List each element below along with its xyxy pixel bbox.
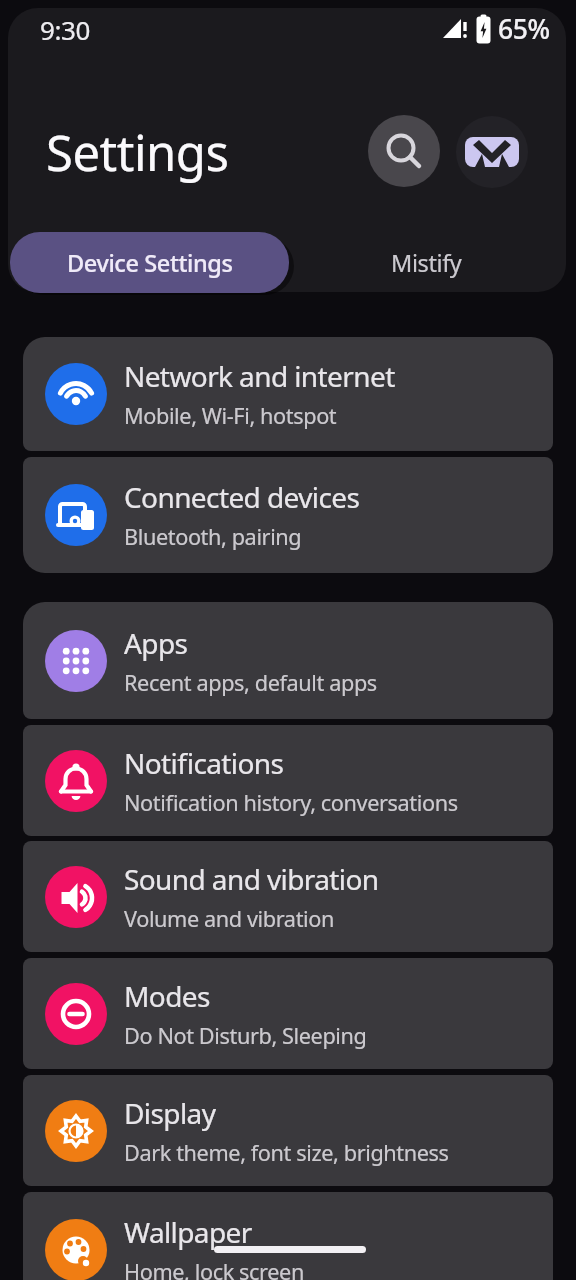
staticText: Settings	[46, 119, 229, 186]
button[interactable]: Network and internet	[23, 337, 553, 451]
button[interactable]	[456, 116, 528, 188]
staticText: Sound and vibration	[124, 860, 379, 898]
staticText: Recent apps, default apps	[124, 668, 377, 698]
button[interactable]: Apps	[23, 602, 553, 719]
staticText: Home, lock screen	[124, 1257, 304, 1280]
button[interactable]: Modes	[23, 958, 553, 1069]
staticText: Apps	[124, 624, 188, 662]
button[interactable]: Connected devices	[23, 457, 553, 573]
staticText: Bluetooth, pairing	[124, 522, 302, 552]
button[interactable]: Device Settings	[10, 232, 289, 293]
staticText: Do Not Disturb, Sleeping	[124, 1021, 367, 1051]
staticText: 65%	[498, 11, 550, 47]
staticText: Notifications	[124, 744, 284, 782]
button[interactable]: Sound and vibration	[23, 841, 553, 952]
staticText: Volume and vibration	[124, 904, 334, 934]
staticText: Wallpaper	[124, 1213, 252, 1251]
button[interactable]: Notifications	[23, 725, 553, 836]
button[interactable]: Mistify	[296, 232, 556, 293]
button[interactable]	[368, 115, 440, 187]
button[interactable]: Display	[23, 1075, 553, 1186]
staticText: Mobile, Wi-Fi, hotspot	[124, 401, 337, 431]
staticText: Notification history, conversations	[124, 788, 458, 818]
staticText: Device Settings	[67, 247, 233, 279]
staticText: Display	[124, 1094, 216, 1132]
staticText: Dark theme, font size, brightness	[124, 1138, 449, 1168]
button[interactable]: Wallpaper	[23, 1192, 553, 1280]
staticText: Mistify	[391, 247, 462, 279]
staticText: Network and internet	[124, 357, 395, 395]
staticText: Connected devices	[124, 478, 360, 516]
staticText: Modes	[124, 977, 210, 1015]
staticText: 9:30	[40, 12, 90, 47]
